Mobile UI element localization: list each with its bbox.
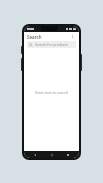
button[interactable]: Search for products xyxy=(27,41,76,48)
button[interactable]: Back xyxy=(30,151,40,158)
staticText: Enter text to search xyxy=(35,90,68,95)
staticText: Search xyxy=(27,34,42,40)
button[interactable]: Recent apps xyxy=(63,151,73,158)
staticText: Search for products xyxy=(35,42,69,47)
button[interactable]: More options xyxy=(69,33,76,40)
button[interactable]: Home xyxy=(47,151,57,158)
